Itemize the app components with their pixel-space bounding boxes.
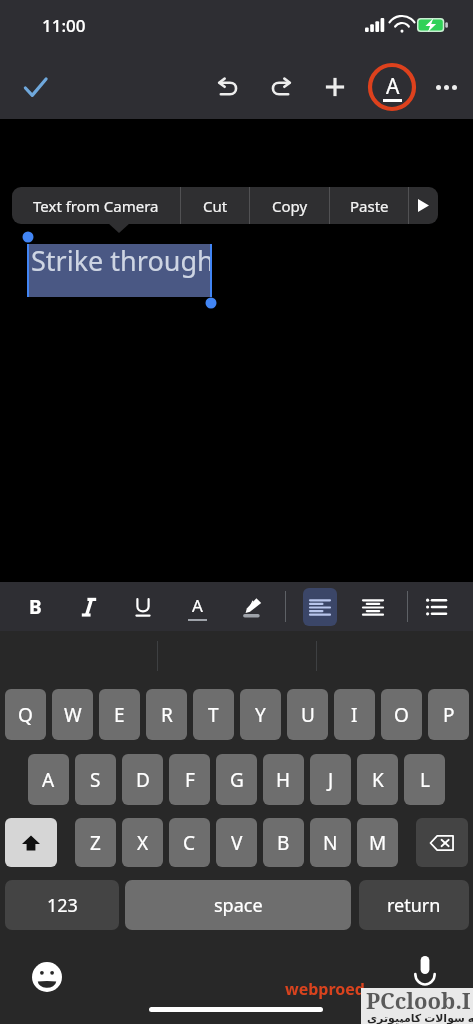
button[interactable]: Undo (207, 66, 249, 108)
button[interactable]: More (409, 187, 438, 224)
staticText: 123 (47, 893, 78, 918)
button[interactable]: More options (425, 66, 467, 108)
button[interactable]: Voice input (407, 953, 443, 989)
staticText: K (372, 767, 384, 793)
button[interactable]: Underline (121, 585, 165, 629)
button[interactable]: N (310, 818, 351, 867)
staticText: L (420, 767, 430, 793)
staticText: V (231, 830, 243, 856)
button[interactable]: Bold (13, 585, 57, 629)
staticText: H (276, 767, 291, 793)
button[interactable]: Text colour (175, 585, 219, 629)
button[interactable]: D (122, 754, 163, 805)
staticText: E (114, 702, 125, 728)
button[interactable]: C (169, 818, 210, 867)
button[interactable]: Italic (67, 585, 111, 629)
button[interactable]: space (125, 880, 351, 930)
staticText: Z (90, 830, 101, 856)
staticText: Copy (272, 196, 308, 216)
staticText: space (214, 893, 263, 918)
staticText: B (29, 594, 42, 620)
staticText: Strike through (31, 242, 214, 279)
staticText: D (136, 767, 150, 793)
staticText: P (443, 702, 455, 728)
staticText: پاسخ به سوالات کامپیوتری (367, 1010, 473, 1024)
staticText: F (185, 767, 195, 793)
button[interactable]: X (122, 818, 163, 867)
button[interactable]: return (359, 880, 469, 930)
button[interactable]: U (287, 689, 328, 740)
button[interactable]: S (75, 754, 116, 805)
staticText: N (323, 830, 338, 856)
staticText: PCcloob.Ir (366, 985, 473, 1021)
button[interactable]: F (169, 754, 210, 805)
staticText: G (230, 767, 244, 793)
staticText: B (277, 830, 290, 856)
button[interactable]: Highlight (230, 585, 274, 629)
button[interactable]: Text format (368, 63, 416, 111)
button[interactable]: V (216, 818, 257, 867)
button[interactable]: H (263, 754, 304, 805)
button[interactable]: Bulleted list (414, 585, 458, 629)
staticText: A (42, 767, 55, 793)
staticText: S (90, 767, 101, 793)
button[interactable]: Align centre (356, 588, 390, 626)
button[interactable]: Done (14, 66, 56, 108)
staticText: R (161, 702, 173, 728)
button[interactable]: Paste (330, 187, 408, 224)
button[interactable]: P (428, 689, 469, 740)
staticText: return (387, 893, 441, 918)
staticText: X (137, 830, 149, 856)
staticText: Cut (203, 196, 228, 216)
staticText: C (183, 830, 196, 856)
staticText: Text from Camera (33, 196, 159, 216)
button[interactable]: B (263, 818, 304, 867)
button[interactable]: Backspace (416, 818, 468, 867)
button[interactable]: M (357, 818, 398, 867)
button[interactable]: Q (5, 689, 46, 740)
button[interactable]: Align left (303, 588, 337, 626)
staticText: T (208, 702, 219, 728)
button[interactable]: I (334, 689, 375, 740)
staticText: 11:00 (42, 14, 86, 37)
button[interactable]: Emoji (29, 959, 65, 995)
staticText: O (394, 702, 409, 728)
button[interactable]: L (404, 754, 445, 805)
button[interactable]: Shift (5, 818, 57, 867)
button[interactable]: Text from Camera (12, 187, 180, 224)
button[interactable]: Z (75, 818, 116, 867)
button[interactable]: R (146, 689, 187, 740)
staticText: Y (255, 702, 266, 728)
button[interactable]: Redo (260, 66, 302, 108)
staticText: A (192, 594, 203, 617)
button[interactable]: W (52, 689, 93, 740)
staticText: U (301, 702, 315, 728)
staticText: Paste (350, 196, 389, 216)
button[interactable]: Y (240, 689, 281, 740)
button[interactable]: Cut (181, 187, 249, 224)
button[interactable]: K (357, 754, 398, 805)
button[interactable]: J (310, 754, 351, 805)
staticText: A (386, 72, 400, 101)
staticText: Q (18, 702, 33, 728)
staticText: W (64, 702, 82, 728)
staticText: J (328, 767, 334, 793)
button[interactable]: E (99, 689, 140, 740)
button[interactable]: G (216, 754, 257, 805)
staticText: M (369, 830, 387, 856)
button[interactable]: T (193, 689, 234, 740)
button[interactable]: Copy (250, 187, 329, 224)
button[interactable]: O (381, 689, 422, 740)
button[interactable]: A (28, 754, 69, 805)
staticText: I (351, 702, 358, 728)
button[interactable]: 123 (5, 880, 119, 930)
button[interactable]: Insert (314, 66, 356, 108)
staticText: webproed (285, 978, 365, 1000)
